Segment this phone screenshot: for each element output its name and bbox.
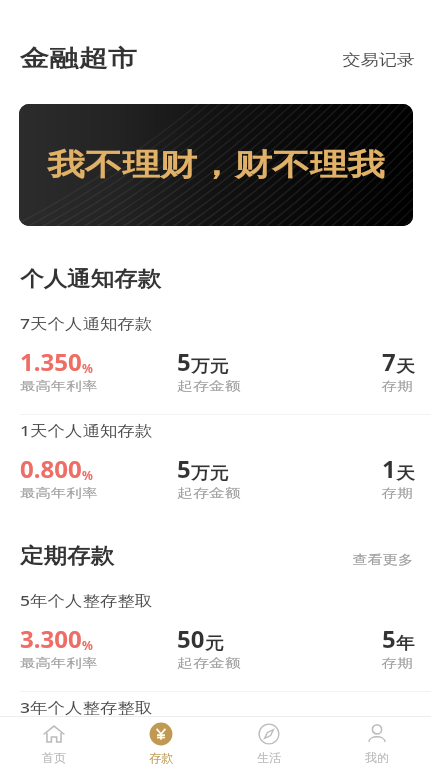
staticText: % bbox=[82, 467, 93, 483]
staticText: 3.300 bbox=[20, 622, 82, 655]
staticText: 存期 bbox=[382, 655, 413, 670]
staticText: % bbox=[82, 637, 93, 653]
staticText: 起存金额 bbox=[177, 378, 241, 393]
button[interactable]: 我不理财，财不理我 bbox=[19, 104, 413, 226]
staticText: 首页 bbox=[42, 750, 66, 765]
staticText: 1天个人通知存款 bbox=[20, 420, 153, 440]
staticText: 1 bbox=[382, 452, 396, 485]
button[interactable]: 7天个人通知存款 bbox=[0, 313, 431, 414]
staticText: 0.800 bbox=[20, 452, 82, 485]
staticText: 起存金额 bbox=[177, 655, 241, 670]
staticText: 1.350 bbox=[20, 345, 82, 378]
staticText: 定期存款 bbox=[20, 543, 114, 569]
staticText: 个人通知存款 bbox=[20, 266, 161, 292]
staticText: 年 bbox=[396, 633, 415, 654]
staticText: 存期 bbox=[382, 378, 413, 393]
staticText: % bbox=[82, 360, 93, 376]
staticText: 5 bbox=[382, 622, 396, 655]
staticText: 最高年利率 bbox=[20, 378, 97, 393]
staticText: 存款 bbox=[149, 750, 173, 765]
button[interactable]: 1天个人通知存款 bbox=[0, 420, 431, 521]
staticText: 7 bbox=[382, 345, 396, 378]
button[interactable]: 首页 bbox=[0, 717, 107, 768]
staticText: 50 bbox=[177, 622, 205, 655]
button[interactable]: 交易记录 bbox=[355, 47, 415, 70]
staticText: 5年个人整存整取 bbox=[20, 590, 153, 610]
staticText: 5 bbox=[177, 345, 191, 378]
button[interactable]: 查看更多 bbox=[361, 545, 413, 567]
staticText: 查看更多 bbox=[353, 551, 413, 567]
staticText: 金融超市 bbox=[20, 44, 137, 73]
staticText: 万元 bbox=[191, 356, 228, 377]
button[interactable]: 我的 bbox=[323, 717, 431, 768]
staticText: 我的 bbox=[365, 750, 389, 765]
staticText: 生活 bbox=[257, 750, 281, 765]
button[interactable]: 存款 bbox=[107, 717, 215, 768]
staticText: 我不理财，财不理我 bbox=[47, 146, 385, 184]
staticText: 最高年利率 bbox=[20, 655, 97, 670]
staticText: 交易记录 bbox=[342, 51, 415, 70]
staticText: 元 bbox=[205, 633, 224, 654]
staticText: 最高年利率 bbox=[20, 485, 97, 500]
button[interactable]: 生活 bbox=[215, 717, 323, 768]
staticText: 5 bbox=[177, 452, 191, 485]
staticText: 万元 bbox=[191, 463, 228, 484]
staticText: 7天个人通知存款 bbox=[20, 313, 153, 333]
button[interactable]: 5年个人整存整取 bbox=[0, 590, 431, 691]
staticText: 天 bbox=[396, 463, 415, 484]
staticText: 起存金额 bbox=[177, 485, 241, 500]
staticText: 3年个人整存整取 bbox=[20, 697, 153, 717]
staticText: 天 bbox=[396, 356, 415, 377]
staticText: 存期 bbox=[382, 485, 413, 500]
